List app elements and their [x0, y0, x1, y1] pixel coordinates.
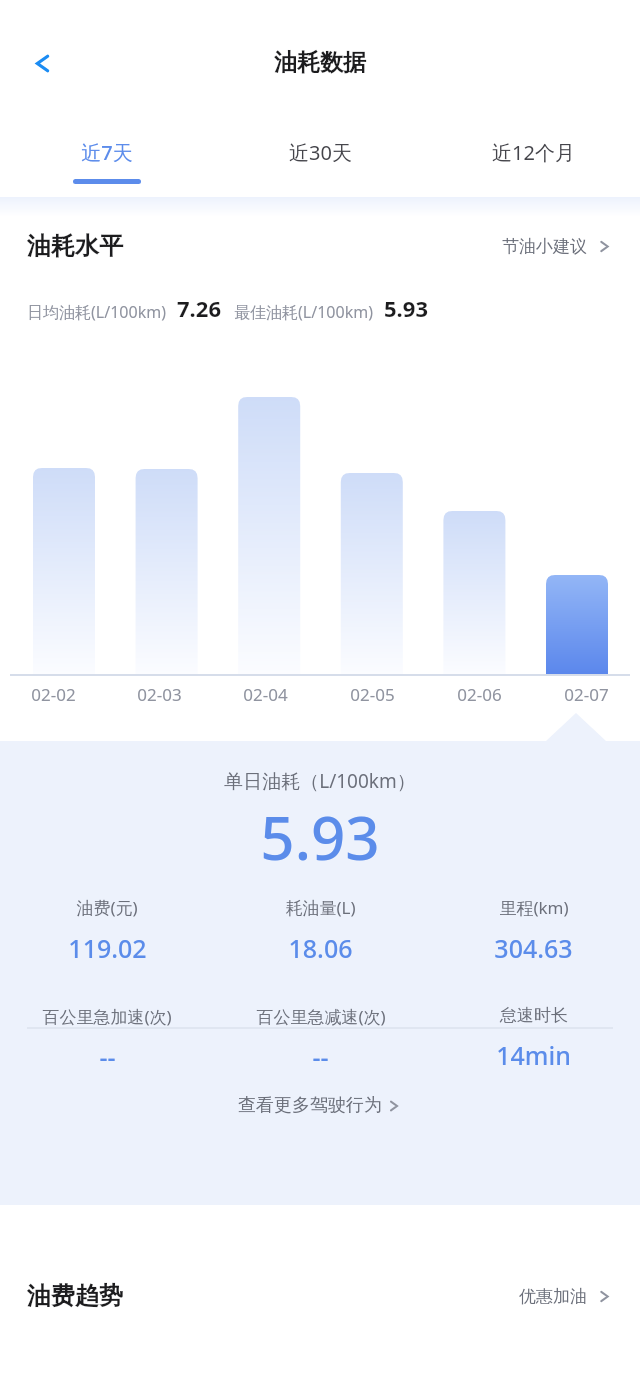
staticText: 02-03: [137, 683, 182, 706]
staticText: 7.26: [177, 293, 221, 323]
staticText: 耗油量(L): [285, 896, 356, 919]
staticText: 百公里急加速(次): [42, 1005, 172, 1028]
staticText: 最佳油耗(L/100km): [234, 301, 373, 323]
button[interactable]: 查看更多驾驶行为: [238, 1094, 402, 1117]
staticText: 单日油耗（L/100km）: [224, 768, 416, 794]
button[interactable]: 优惠加油: [519, 1286, 613, 1307]
staticText: 百公里急减速(次): [256, 1005, 386, 1028]
staticText: 近7天: [81, 139, 133, 166]
staticText: 近12个月: [492, 139, 575, 166]
staticText: 油费(元): [76, 896, 138, 919]
staticText: --: [99, 1040, 116, 1074]
staticText: 02-02: [31, 683, 76, 706]
button[interactable]: 近30天: [214, 125, 427, 197]
staticText: 02-07: [564, 683, 609, 706]
button[interactable]: 节油小建议: [502, 236, 613, 257]
staticText: 油耗水平: [27, 231, 123, 261]
staticText: 5.93: [384, 293, 428, 323]
staticText: 日均油耗(L/100km): [27, 301, 166, 323]
staticText: 近30天: [289, 139, 352, 166]
button[interactable]: 近7天: [0, 125, 214, 197]
staticText: 油费趋势: [27, 1281, 123, 1311]
staticText: 怠速时长: [500, 1005, 568, 1026]
staticText: 查看更多驾驶行为: [238, 1094, 382, 1117]
staticText: 里程(km): [499, 896, 569, 919]
staticText: 5.93: [260, 796, 380, 878]
staticText: 02-05: [350, 683, 395, 706]
staticText: 节油小建议: [502, 236, 587, 257]
staticText: 119.02: [68, 931, 147, 965]
staticText: 18.06: [288, 931, 353, 965]
staticText: 油耗数据: [274, 48, 366, 77]
staticText: 优惠加油: [519, 1286, 587, 1307]
staticText: 14min: [496, 1038, 571, 1072]
staticText: 02-04: [243, 683, 288, 706]
staticText: --: [312, 1040, 329, 1074]
staticText: 02-06: [457, 683, 502, 706]
button[interactable]: 近12个月: [427, 125, 640, 197]
staticText: 304.63: [494, 931, 573, 965]
button[interactable]: Back: [14, 35, 70, 91]
